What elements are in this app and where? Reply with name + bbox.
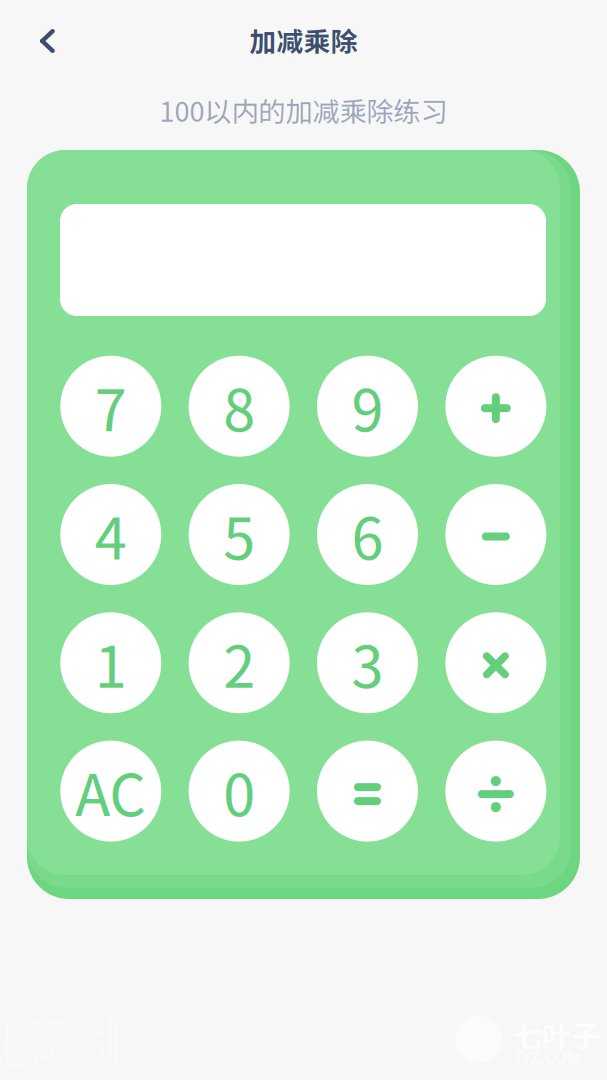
button[interactable]: 1 xyxy=(60,612,161,713)
staticText: 2 xyxy=(223,621,255,704)
button[interactable]: Divide xyxy=(445,741,546,842)
button[interactable]: AC xyxy=(60,741,161,842)
button[interactable]: 7 xyxy=(60,356,161,457)
button[interactable]: 0 xyxy=(189,741,290,842)
button[interactable]: Multiply xyxy=(445,612,546,713)
staticText: 7 xyxy=(95,365,127,448)
button[interactable]: 9 xyxy=(317,356,418,457)
staticText: 100以内的加减乘除练习 xyxy=(159,90,447,130)
staticText: AC xyxy=(75,750,146,833)
staticText: 9 xyxy=(351,365,383,448)
staticText: 0 xyxy=(223,750,255,833)
staticText: 1 xyxy=(95,621,127,704)
button[interactable]: 4 xyxy=(60,484,161,585)
staticText: 5 xyxy=(223,493,255,576)
staticText: 加减乘除 xyxy=(249,21,357,59)
staticText: 8 xyxy=(223,365,255,448)
button[interactable]: Equals xyxy=(317,741,418,842)
button[interactable]: Back xyxy=(14,12,72,70)
staticText: 4 xyxy=(95,493,127,576)
button[interactable]: 3 xyxy=(317,612,418,713)
button[interactable]: Minus xyxy=(445,484,546,585)
staticText: 3 xyxy=(351,621,383,704)
button[interactable]: 8 xyxy=(189,356,290,457)
button[interactable]: 5 xyxy=(189,484,290,585)
button[interactable]: 6 xyxy=(317,484,418,585)
button[interactable]: Plus xyxy=(445,356,546,457)
button[interactable]: 2 xyxy=(189,612,290,713)
staticText: 6 xyxy=(351,493,383,576)
